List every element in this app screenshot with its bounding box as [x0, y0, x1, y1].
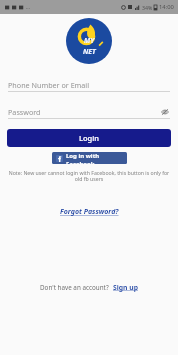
button[interactable]: Password: [8, 106, 170, 119]
staticText: Log in with Facebook: [66, 152, 123, 164]
button[interactable]: Show password: [160, 107, 170, 117]
button[interactable]: MY NET logo: [66, 18, 112, 64]
button[interactable]: Log in with Facebook: [52, 152, 127, 164]
staticText: Login: [79, 133, 99, 143]
staticText: Don't have an account?: [40, 283, 109, 292]
staticText: 34%: [142, 4, 153, 11]
button[interactable]: Phone Number or Email: [8, 79, 170, 92]
staticText: 14:00: [159, 3, 174, 11]
button[interactable]: Sign up: [113, 283, 138, 292]
staticText: MY: [84, 36, 95, 46]
staticText: NET: [83, 47, 96, 57]
staticText: Phone Number or Email: [8, 80, 170, 90]
staticText: Password: [8, 107, 160, 117]
staticText: ...: [26, 4, 31, 11]
staticText: Note: New user cannot login with Faceboo…: [8, 169, 170, 183]
button[interactable]: Forgot Password?: [57, 204, 122, 220]
button[interactable]: Login: [7, 129, 171, 147]
